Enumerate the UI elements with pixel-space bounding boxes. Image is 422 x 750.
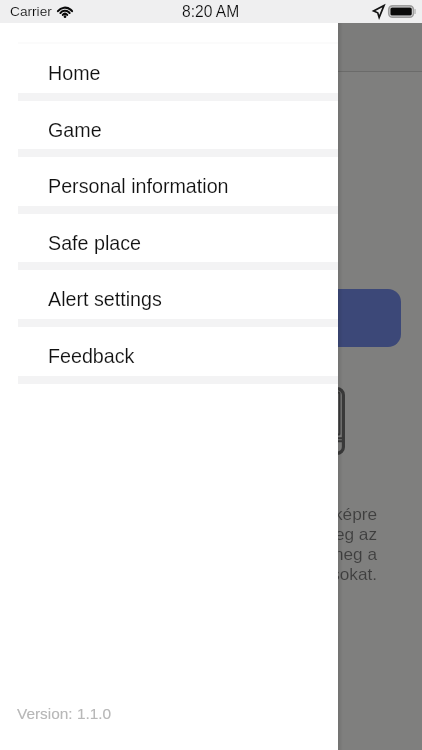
staticText: Personal information [48, 175, 229, 197]
button[interactable]: Close navigation drawer [0, 23, 422, 750]
button[interactable]: Game [0, 101, 338, 150]
staticText: Carrier [10, 4, 52, 19]
button[interactable]: Alert settings [0, 270, 338, 319]
staticText: Alert settings [48, 288, 162, 310]
button[interactable]: Home [0, 44, 338, 93]
button[interactable] [210, 289, 401, 347]
staticText: Feedback [48, 345, 135, 367]
staticText: a kezdőképre nyomva meg az indítja meg a… [140, 504, 377, 584]
staticText: Safe place [48, 232, 142, 254]
button[interactable]: Feedback [0, 327, 338, 376]
staticText: 8:20 AM [182, 3, 240, 20]
staticText: Game [48, 119, 102, 141]
button[interactable]: Personal information [0, 157, 338, 206]
button[interactable]: Safe place [0, 214, 338, 263]
staticText: Version: 1.1.0 [17, 705, 112, 722]
staticText: Home [48, 62, 101, 84]
